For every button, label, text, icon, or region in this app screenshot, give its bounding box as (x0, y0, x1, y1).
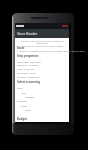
staticText: Surface: Mixed trail (17, 75, 40, 78)
staticText: Select a warning (17, 80, 41, 84)
staticText: Long (25, 108, 31, 111)
staticText: Level (17, 86, 23, 89)
staticText: Low (21, 91, 26, 94)
staticText: Start date: May 08th (17, 60, 41, 63)
staticText: Store Reader (17, 31, 38, 36)
staticText: Elevation: 430 ft (17, 71, 36, 74)
staticText: Route (17, 46, 25, 49)
staticText: Duration (17, 99, 28, 102)
staticText: Step properties (17, 54, 39, 58)
staticText: A route is a sequence of steps that a ru… (17, 50, 85, 53)
staticText: Distance: 12 miles (17, 63, 39, 66)
staticText: Budget (17, 117, 28, 121)
staticText: Short (21, 104, 28, 107)
staticText: Medium (25, 95, 35, 98)
button[interactable]: Store Reader (15, 29, 69, 38)
staticText: Create a new route or edit an existing o… (20, 39, 64, 48)
staticText: Pace: 8:35 min (17, 67, 35, 70)
